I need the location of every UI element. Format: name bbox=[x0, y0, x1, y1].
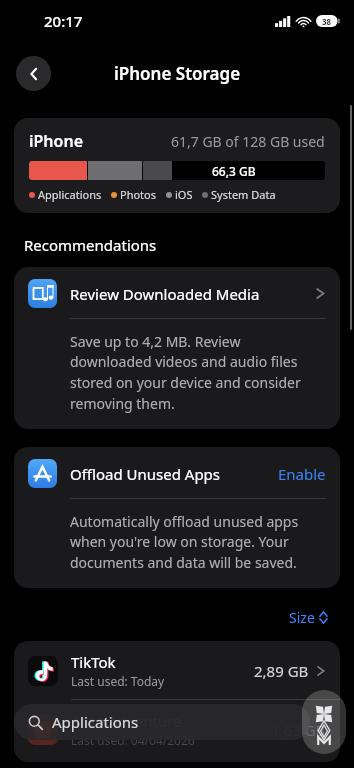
button[interactable]: Review Downloaded Media bbox=[14, 267, 340, 429]
staticText: Save up to 4,2 MB. Review downloaded vid… bbox=[70, 332, 324, 414]
button[interactable]: Enable bbox=[278, 464, 326, 484]
staticText: iOS bbox=[175, 187, 193, 202]
button[interactable]: TikTok bbox=[14, 641, 340, 699]
button[interactable]: Offload Unused Apps bbox=[14, 447, 340, 588]
button[interactable]: iPhone bbox=[14, 118, 340, 213]
staticText: iPhone Storage bbox=[114, 62, 241, 85]
button[interactable]: Auto Adventure bbox=[14, 700, 340, 762]
staticText: 20:17 bbox=[44, 11, 83, 31]
staticText: Size bbox=[289, 608, 315, 627]
button[interactable]: Applications bbox=[14, 704, 310, 740]
staticText: 66,3 GB bbox=[212, 163, 256, 179]
staticText: Photos bbox=[120, 187, 157, 202]
staticText: System Data bbox=[211, 187, 276, 202]
staticText: Recommendations bbox=[24, 235, 157, 255]
staticText: iPhone bbox=[29, 130, 84, 152]
staticText: Last used: Today bbox=[71, 673, 165, 689]
staticText: Applications bbox=[52, 712, 139, 732]
staticText: 61,7 GB of 128 GB used bbox=[171, 132, 325, 151]
staticText: 2,89 GB bbox=[254, 661, 309, 681]
staticText: 1,63 GB bbox=[271, 720, 326, 740]
staticText: Review Downloaded Media bbox=[70, 284, 260, 304]
staticText: Auto Adventure bbox=[71, 711, 182, 731]
staticText: 38 bbox=[322, 16, 332, 27]
staticText: Automatically offload unused apps when y… bbox=[70, 512, 324, 573]
staticText: Applications bbox=[38, 187, 102, 202]
staticText: Last used: 04/04/2026 bbox=[71, 732, 195, 748]
button[interactable]: Size bbox=[285, 604, 332, 631]
staticText: TikTok bbox=[71, 652, 116, 672]
staticText: Offload Unused Apps bbox=[70, 464, 221, 484]
button[interactable]: Back bbox=[16, 56, 51, 91]
